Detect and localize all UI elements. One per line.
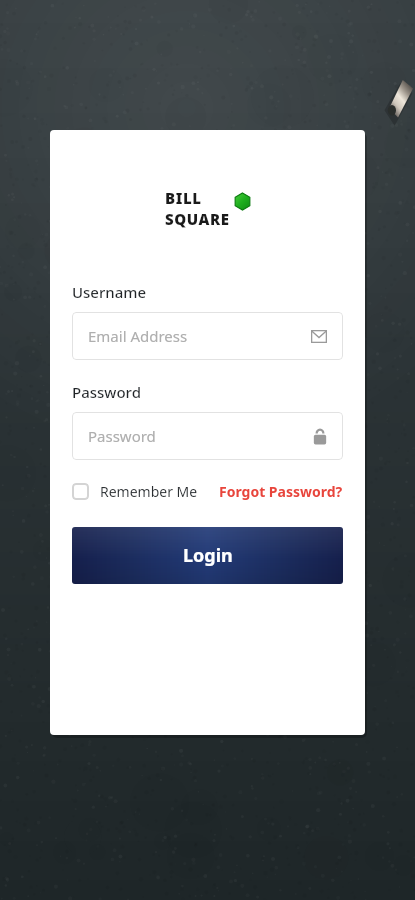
staticText: Password — [88, 426, 156, 446]
button[interactable]: Email Address — [72, 312, 343, 360]
button[interactable]: Login — [72, 527, 343, 584]
staticText: SQUARE — [165, 209, 230, 229]
staticText: Remember Me — [100, 482, 198, 501]
staticText: BILL — [165, 188, 202, 208]
button[interactable]: Forgot Password? — [219, 482, 343, 501]
staticText: Email Address — [88, 326, 188, 346]
staticText: Password — [72, 382, 141, 402]
button[interactable]: Password — [72, 412, 343, 460]
staticText: Forgot Password? — [219, 482, 343, 501]
staticText: Username — [72, 282, 147, 302]
staticText: Login — [183, 543, 233, 568]
button[interactable]: Remember Me — [72, 482, 198, 501]
